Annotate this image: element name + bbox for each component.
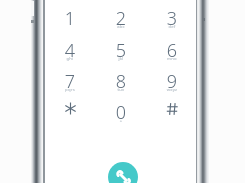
button[interactable]: Pound <box>149 99 195 127</box>
button[interactable]: 3 <box>149 5 195 33</box>
button[interactable]: 0 <box>98 99 144 127</box>
staticText: 0 <box>98 100 144 119</box>
staticText: 3 <box>149 6 195 25</box>
button[interactable]: 5 <box>98 37 144 65</box>
staticText: ghi <box>47 56 93 63</box>
staticText: 7 <box>47 69 93 88</box>
button[interactable]: 7 <box>47 68 93 96</box>
staticText: 6 <box>149 38 195 57</box>
staticText: + <box>98 118 144 125</box>
staticText: tuv <box>98 87 144 94</box>
button[interactable]: 2 <box>98 5 144 33</box>
staticText: mno <box>149 56 195 63</box>
staticText: 1 <box>47 6 93 25</box>
staticText: pqrs <box>47 87 93 94</box>
staticText: def <box>149 24 195 31</box>
button[interactable]: 9 <box>149 68 195 96</box>
staticText: 2 <box>98 6 144 25</box>
staticText: 8 <box>98 69 144 88</box>
button[interactable]: 6 <box>149 37 195 65</box>
staticText: 5 <box>98 38 144 57</box>
button[interactable]: Star <box>47 99 93 127</box>
staticText: abc <box>98 24 144 31</box>
button[interactable]: 8 <box>98 68 144 96</box>
staticText: 9 <box>149 69 195 88</box>
button[interactable]: 4 <box>47 37 93 65</box>
button[interactable]: 1 <box>47 5 93 33</box>
staticText: jkl <box>98 56 144 63</box>
staticText: 4 <box>47 38 93 57</box>
button[interactable]: Call <box>108 162 138 183</box>
staticText: wxyz <box>149 87 195 94</box>
